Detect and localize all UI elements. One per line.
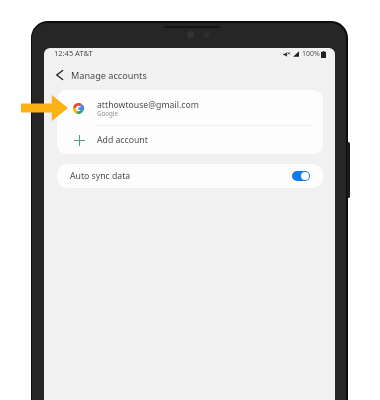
button[interactable]: Auto sync data, on (292, 171, 310, 181)
staticText: atthowtouse@gmail.com (97, 99, 199, 111)
button[interactable]: Add account (57, 126, 323, 154)
button[interactable]: Navigate up (51, 66, 68, 83)
staticText: Auto sync data (70, 170, 131, 182)
button[interactable]: Auto sync data (57, 164, 323, 188)
staticText: 100% (302, 49, 320, 59)
staticText: 12:45 AT&T (54, 48, 93, 58)
staticText: Add account (97, 134, 148, 146)
staticText: Manage accounts (71, 69, 147, 81)
other: Pointer to the Google account row (21, 95, 68, 121)
staticText: Google (97, 109, 118, 117)
button[interactable]: atthowtouse@gmail.com (57, 90, 323, 125)
